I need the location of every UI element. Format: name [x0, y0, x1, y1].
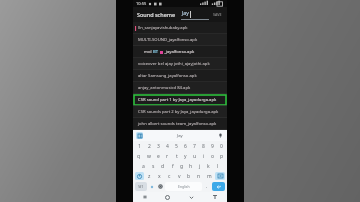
staticText: p: [220, 153, 224, 160]
button[interactable]: d: [158, 161, 168, 171]
button[interactable]: lln_sanjayavishubaby.apk: [133, 22, 227, 34]
staticText: x: [158, 173, 161, 180]
button[interactable]: Backspace: [215, 172, 225, 180]
button[interactable]: 7: [190, 141, 199, 151]
staticText: h: [189, 163, 193, 170]
staticText: 1: [138, 143, 141, 150]
staticText: u: [193, 153, 197, 160]
staticText: anjay_antonmusicd 84.apk: [138, 85, 191, 91]
button[interactable]: voiceover bel ajay jothi_ajayjothi.apk: [133, 58, 227, 70]
staticText: z: [148, 173, 151, 180]
button[interactable]: 5: [172, 141, 181, 151]
button[interactable]: Keyboard settings: [136, 132, 143, 139]
button[interactable]: Enter: [212, 182, 225, 191]
button[interactable]: g: [177, 161, 186, 171]
button[interactable]: altar Samsung_jayalfonso.apk: [133, 70, 227, 82]
staticText: v: [178, 173, 181, 180]
staticText: !#1: [138, 184, 144, 189]
staticText: voiceover bel ajay jothi_ajayjothi.apk: [138, 61, 210, 67]
button[interactable]: Jay: [181, 10, 209, 20]
button[interactable]: u: [190, 151, 199, 161]
button[interactable]: p: [217, 151, 226, 161]
button[interactable]: 8: [199, 141, 208, 151]
button[interactable]: Home: [156, 192, 179, 202]
button[interactable]: CSR sound part 1 by Jaya_jayadurga.apk: [133, 94, 227, 106]
button[interactable]: t: [172, 151, 181, 161]
staticText: 4: [166, 143, 169, 150]
button[interactable]: Shift: [135, 172, 144, 180]
staticText: lln_sanjayavishubaby.apk: [138, 25, 188, 31]
staticText: 5: [175, 143, 178, 150]
button[interactable]: CSR sounds part 2 by Jaya_jayadurga.apk: [133, 106, 227, 118]
button[interactable]: i: [199, 151, 208, 161]
staticText: 8: [202, 143, 205, 150]
button[interactable]: j: [195, 161, 204, 171]
staticText: 10:55: [136, 1, 147, 6]
button[interactable]: mol: [133, 46, 227, 58]
button[interactable]: a: [138, 161, 148, 171]
button[interactable]: q: [134, 151, 144, 161]
button[interactable]: MULTI-SOUND_jayalfonso.apk: [133, 34, 227, 46]
staticText: f: [172, 163, 174, 170]
button[interactable]: 4: [163, 141, 172, 151]
button[interactable]: k: [204, 161, 213, 171]
staticText: e: [157, 153, 160, 160]
button[interactable]: l: [213, 161, 222, 171]
button[interactable]: 9: [208, 141, 217, 151]
button[interactable]: Recents: [133, 192, 156, 202]
staticText: d: [161, 163, 165, 170]
button[interactable]: h: [186, 161, 195, 171]
staticText: n: [197, 173, 201, 180]
staticText: BT: [153, 49, 159, 55]
button[interactable]: 1: [134, 141, 144, 151]
button[interactable]: anjay_antonmusicd 84.apk: [133, 82, 227, 94]
button[interactable]: john albert sounds team_jayalfonso.apk: [133, 118, 227, 130]
button[interactable]: s: [148, 161, 158, 171]
staticText: CSR sound part 1 by Jaya_jayadurga.apk: [138, 97, 217, 103]
staticText: q: [137, 153, 141, 160]
button[interactable]: o: [208, 151, 217, 161]
staticText: c: [168, 173, 171, 180]
staticText: m: [207, 173, 212, 180]
staticText: r: [166, 153, 169, 160]
button[interactable]: c: [164, 171, 174, 181]
staticText: 6: [184, 143, 187, 150]
button[interactable]: y: [181, 151, 190, 161]
staticText: 3: [157, 143, 160, 150]
staticText: b: [187, 173, 191, 180]
button[interactable]: 3: [154, 141, 163, 151]
staticText: k: [207, 163, 210, 170]
staticText: t: [176, 153, 178, 160]
button[interactable]: b: [184, 171, 194, 181]
button[interactable]: w: [144, 151, 154, 161]
button[interactable]: z: [145, 171, 154, 181]
button[interactable]: f: [168, 161, 177, 171]
button[interactable]: v: [174, 171, 184, 181]
staticText: 0: [220, 143, 223, 150]
staticText: a: [142, 163, 145, 170]
button[interactable]: !#1: [135, 182, 147, 191]
button[interactable]: r: [163, 151, 172, 161]
button[interactable]: Hide keyboard: [179, 192, 203, 202]
staticText: w: [147, 153, 151, 160]
button[interactable]: 2: [144, 141, 154, 151]
staticText: .: [206, 183, 208, 190]
button[interactable]: 6: [181, 141, 190, 151]
button[interactable]: English: [165, 182, 202, 191]
button[interactable]: .: [203, 182, 211, 191]
button[interactable]: Keyboard layout: [203, 192, 227, 202]
staticText: y: [184, 153, 187, 160]
staticText: English: [178, 184, 190, 189]
staticText: 9: [211, 143, 214, 150]
button[interactable]: Keyboard options: [148, 182, 156, 191]
button[interactable]: m: [204, 171, 214, 181]
button[interactable]: Voice input: [217, 132, 224, 139]
button[interactable]: x: [154, 171, 164, 181]
button[interactable]: e: [154, 151, 163, 161]
button[interactable]: SAVE: [212, 10, 223, 19]
button[interactable]: 0: [217, 141, 226, 151]
staticText: Sound scheme: [137, 11, 175, 18]
staticText: l: [217, 163, 219, 170]
button[interactable]: Change language: [156, 182, 164, 191]
button[interactable]: n: [194, 171, 204, 181]
